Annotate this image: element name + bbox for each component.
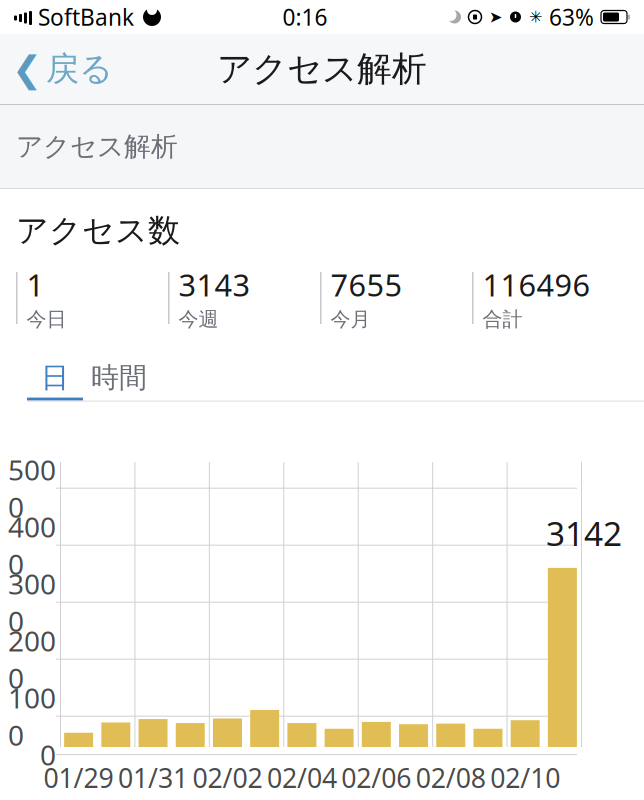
staticText: 3143 (178, 264, 250, 305)
staticText: 4000 (8, 508, 56, 582)
staticText: 5000 (8, 451, 56, 525)
staticText: 今月 (330, 307, 370, 332)
staticText: ❮ (12, 49, 42, 89)
staticText: 02/06 (341, 760, 411, 795)
staticText: 1 (26, 264, 44, 305)
staticText: 時間 (91, 360, 147, 395)
staticText: 63% (549, 2, 594, 32)
staticText: 今日 (26, 307, 66, 332)
staticText: 02/10 (490, 760, 560, 795)
staticText: 3142 (546, 511, 622, 555)
button[interactable]: ❮ (0, 42, 125, 95)
staticText: 02/04 (267, 760, 337, 795)
staticText: 7655 (330, 264, 402, 305)
staticText: 戻る (46, 48, 113, 89)
staticText: 02/08 (416, 760, 486, 795)
staticText: SoftBank (38, 2, 134, 32)
staticText: ✳ (529, 8, 542, 26)
staticText: アクセス解析 (217, 48, 427, 90)
staticText: 01/29 (44, 760, 114, 795)
staticText: 0:16 (282, 2, 327, 32)
button[interactable]: 日 (27, 358, 83, 401)
staticText: 116496 (482, 264, 590, 305)
staticText: 01/31 (118, 760, 188, 795)
button[interactable]: 時間 (83, 358, 155, 401)
staticText: 2000 (8, 622, 56, 696)
staticText: ➤ (489, 8, 502, 26)
staticText: 02/02 (192, 760, 262, 795)
staticText: 合計 (482, 307, 522, 332)
staticText: 1000 (8, 679, 56, 753)
staticText: アクセス解析 (16, 130, 178, 163)
staticText: 0 (40, 736, 56, 773)
staticText: 日 (41, 360, 69, 395)
staticText: 3000 (8, 565, 56, 639)
staticText: アクセス数 (16, 211, 180, 250)
staticText: 今週 (178, 307, 218, 332)
